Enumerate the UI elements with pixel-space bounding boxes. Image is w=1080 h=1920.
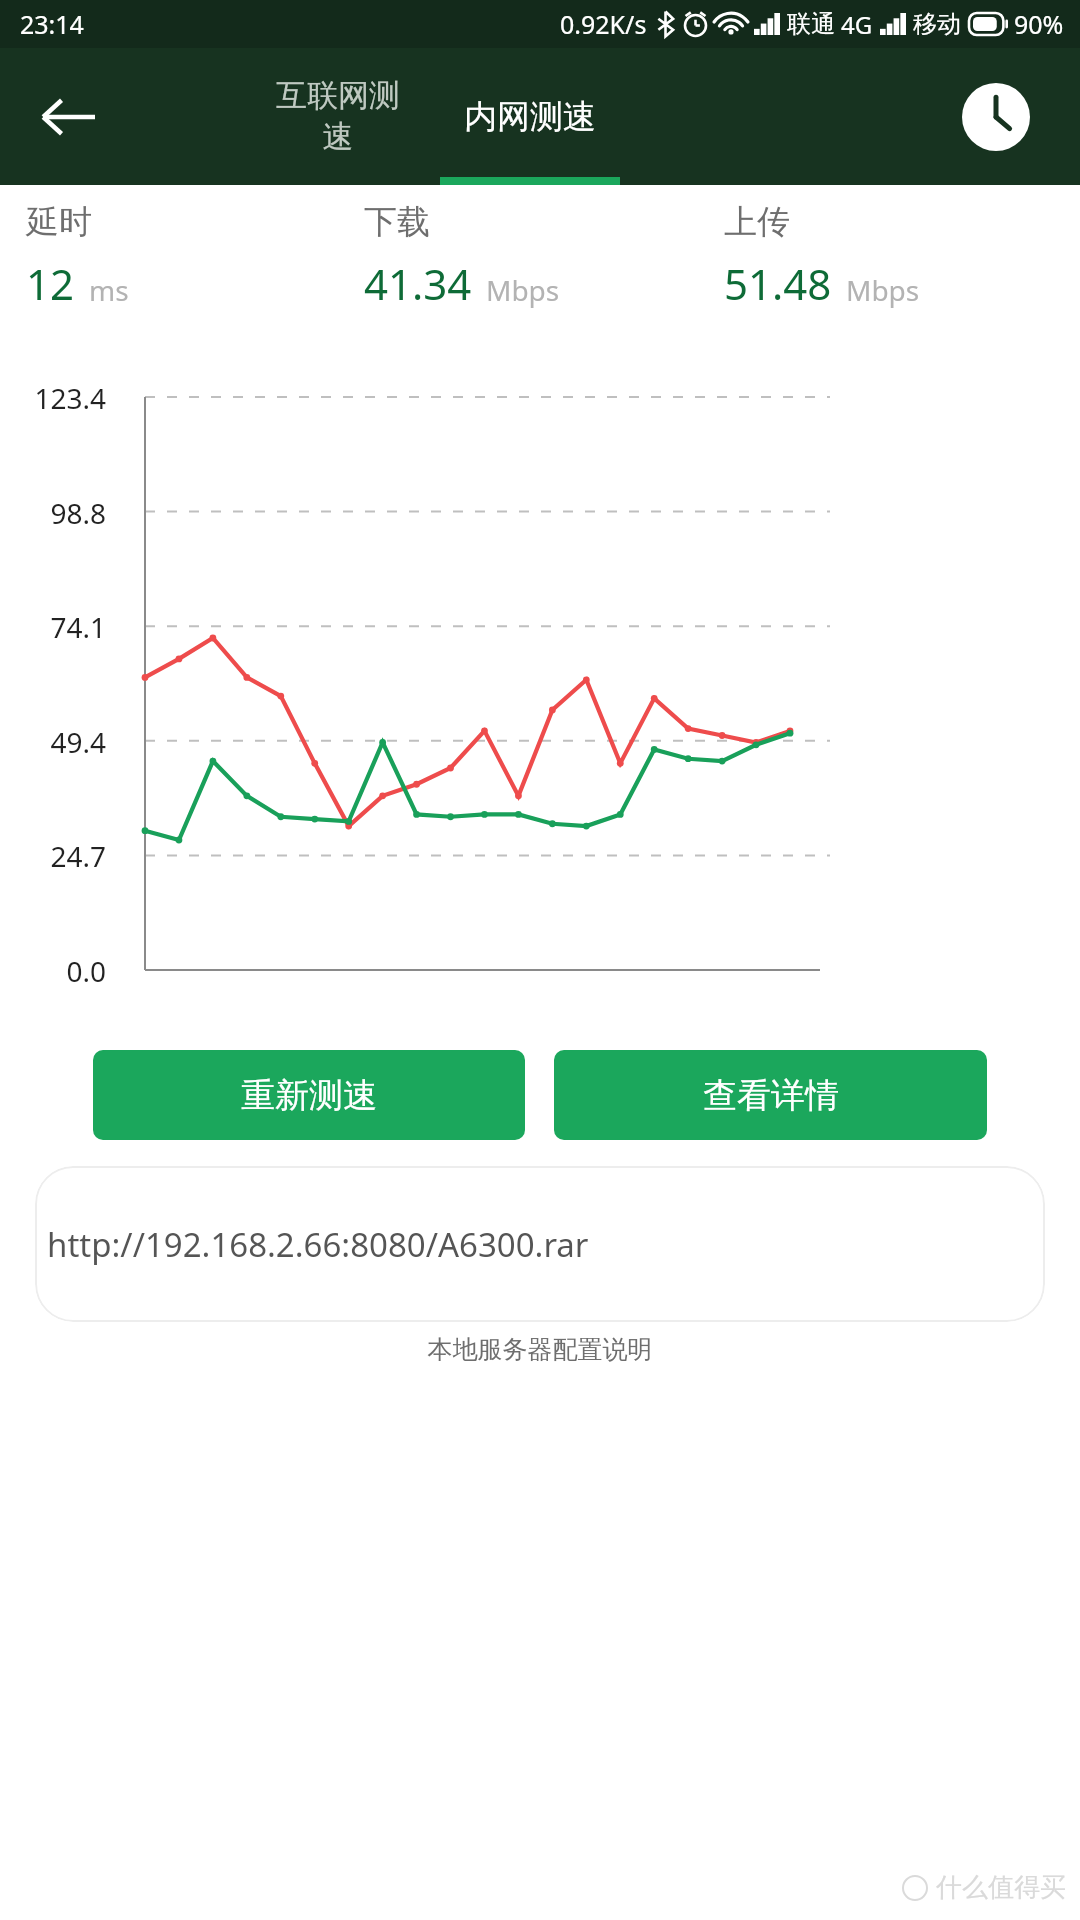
button[interactable]: 查看详情 bbox=[554, 1050, 987, 1140]
staticText: 下载 bbox=[364, 201, 430, 243]
staticText: 90% bbox=[1014, 7, 1064, 41]
button[interactable]: History bbox=[954, 75, 1038, 159]
staticText: 上传 bbox=[724, 201, 790, 243]
staticText: 12 bbox=[26, 255, 75, 312]
button[interactable]: 内网测速 bbox=[440, 48, 620, 185]
staticText: 联通 bbox=[787, 9, 835, 39]
staticText: 41.34 bbox=[364, 255, 472, 312]
staticText: 延时 bbox=[26, 201, 92, 243]
staticText: 本地服务器配置说明 bbox=[0, 1334, 1080, 1365]
staticText: 移动 bbox=[913, 9, 961, 39]
staticText: 98.8 bbox=[0, 494, 106, 532]
staticText: 74.1 bbox=[0, 608, 106, 646]
staticText: 0.0 bbox=[0, 952, 106, 990]
staticText: 重新测速 bbox=[241, 1074, 377, 1117]
staticText: Mbps bbox=[486, 271, 560, 309]
staticText: 51.48 bbox=[724, 255, 832, 312]
button[interactable]: 重新测速 bbox=[93, 1050, 525, 1140]
staticText: 23:14 bbox=[20, 7, 84, 41]
staticText: 互联网测速 bbox=[276, 76, 400, 157]
staticText: 24.7 bbox=[0, 837, 106, 875]
staticText: 0.92K/s bbox=[560, 7, 647, 41]
staticText: http://192.168.2.66:8080/A6300.rar bbox=[47, 1222, 589, 1267]
button[interactable]: http://192.168.2.66:8080/A6300.rar bbox=[35, 1166, 1045, 1322]
staticText: 什么值得买 bbox=[936, 1871, 1066, 1904]
staticText: ms bbox=[89, 271, 129, 309]
button[interactable]: 互联网测速 bbox=[248, 48, 428, 185]
staticText: 123.4 bbox=[0, 379, 106, 417]
staticText: 内网测速 bbox=[464, 96, 596, 138]
staticText: 查看详情 bbox=[703, 1074, 839, 1117]
staticText: 4G bbox=[841, 8, 873, 41]
staticText: Mbps bbox=[846, 271, 920, 309]
button[interactable]: Back bbox=[24, 73, 112, 161]
staticText: 49.4 bbox=[0, 723, 106, 761]
